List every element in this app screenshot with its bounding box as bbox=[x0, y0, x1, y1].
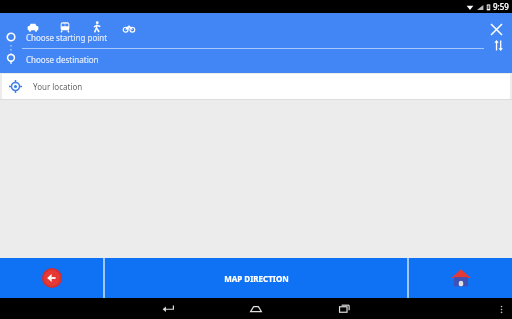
button[interactable]: Back bbox=[146, 298, 190, 319]
button[interactable]: Choose starting point bbox=[0, 26, 512, 48]
staticText: MAP DIRECTION bbox=[224, 273, 289, 284]
button[interactable]: Swap start and destination bbox=[488, 35, 508, 55]
button[interactable]: More options bbox=[496, 304, 506, 314]
button[interactable]: Bicycle bbox=[120, 18, 138, 36]
staticText: Choose starting point bbox=[26, 32, 108, 43]
button[interactable]: Transit bbox=[56, 18, 74, 36]
staticText: Your location bbox=[33, 81, 83, 92]
staticText: Choose destination bbox=[26, 54, 99, 65]
button[interactable]: Your location bbox=[2, 74, 510, 99]
button[interactable]: Recents bbox=[322, 298, 366, 319]
button[interactable]: Choose destination bbox=[0, 49, 512, 69]
button[interactable]: Home bbox=[409, 258, 512, 298]
button[interactable]: MAP DIRECTION bbox=[105, 258, 407, 298]
button[interactable]: Close bbox=[484, 17, 508, 41]
button[interactable]: Walk bbox=[88, 18, 106, 36]
button[interactable]: Back bbox=[0, 258, 103, 298]
button[interactable]: Home bbox=[234, 298, 278, 319]
staticText: 9:59 bbox=[493, 1, 509, 12]
button[interactable]: Drive bbox=[24, 18, 42, 36]
